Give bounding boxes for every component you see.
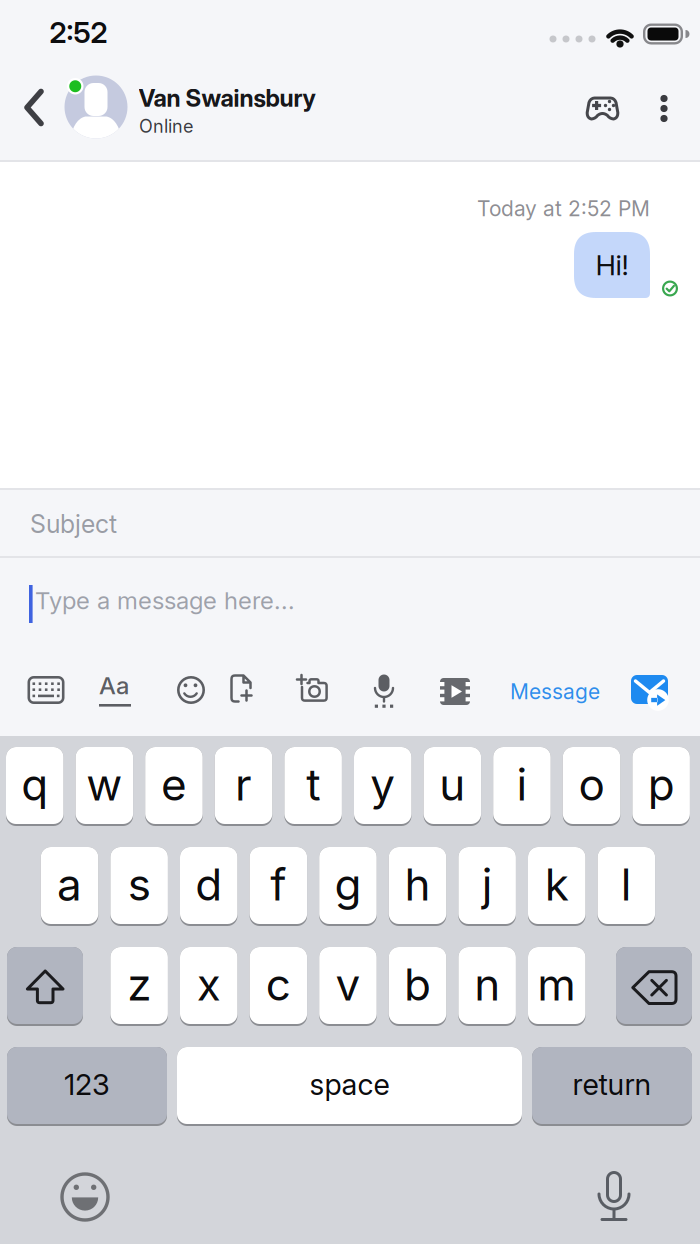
button[interactable]: q	[6, 747, 63, 826]
button[interactable]: b	[389, 947, 446, 1026]
button[interactable]: space	[177, 1047, 522, 1126]
button[interactable]: p	[632, 747, 690, 826]
staticText: Online	[139, 115, 193, 137]
button[interactable]: Emoji keyboard	[60, 1172, 110, 1222]
button[interactable]: m	[528, 947, 585, 1026]
staticText: t	[306, 758, 320, 811]
button[interactable]: Take photo	[296, 674, 328, 702]
button[interactable]: return	[532, 1047, 692, 1126]
button[interactable]: Dictation	[597, 1168, 633, 1224]
button[interactable]: More options	[660, 95, 668, 122]
button[interactable]: e	[145, 747, 203, 826]
staticText: 2:52	[49, 15, 107, 50]
button[interactable]: l	[598, 847, 655, 926]
button[interactable]: v	[319, 947, 377, 1026]
button[interactable]: f	[250, 847, 307, 926]
button[interactable]: d	[180, 847, 237, 926]
button[interactable]: a	[41, 847, 98, 926]
staticText: k	[545, 858, 569, 911]
staticText: s	[128, 858, 151, 911]
button[interactable]: w	[76, 747, 133, 826]
staticText: Hi!	[595, 248, 628, 282]
button[interactable]: c	[250, 947, 307, 1026]
button[interactable]: Emoji	[177, 676, 205, 704]
staticText: space	[309, 1067, 389, 1102]
button[interactable]: Game info	[587, 95, 618, 121]
staticText: d	[195, 858, 222, 911]
staticText: a	[57, 858, 82, 911]
button[interactable]: 123	[7, 1047, 167, 1126]
button[interactable]: g	[319, 847, 377, 926]
staticText: l	[621, 858, 632, 911]
staticText: j	[482, 858, 493, 911]
staticText: n	[474, 958, 500, 1011]
staticText: r	[235, 758, 252, 811]
staticText: f	[270, 858, 286, 911]
button[interactable]: Back	[23, 89, 45, 127]
button[interactable]: k	[528, 847, 585, 926]
button[interactable]: Type a message here...	[35, 586, 295, 615]
button[interactable]: h	[389, 847, 446, 926]
button[interactable]: Video	[440, 678, 470, 705]
staticText: w	[86, 758, 122, 811]
staticText: Aa	[99, 671, 129, 700]
staticText: z	[127, 958, 151, 1011]
button[interactable]: y	[354, 747, 411, 826]
button[interactable]: n	[458, 947, 516, 1026]
staticText: Van Swainsbury	[138, 83, 315, 112]
button[interactable]: Text formatting	[99, 671, 131, 707]
staticText: b	[404, 958, 431, 1011]
staticText: return	[572, 1067, 651, 1102]
button[interactable]: Shift	[7, 947, 83, 1026]
button[interactable]: Hi!	[574, 232, 650, 298]
staticText: v	[335, 958, 360, 1011]
staticText: i	[516, 758, 527, 811]
staticText: h	[405, 858, 431, 911]
button[interactable]: Delete	[616, 947, 692, 1026]
button[interactable]: Voice message	[373, 674, 395, 708]
staticText: g	[334, 858, 361, 911]
button[interactable]: s	[110, 847, 168, 926]
button[interactable]: Subject	[0, 491, 700, 557]
button[interactable]: Send	[630, 674, 670, 710]
button[interactable]: z	[110, 947, 168, 1026]
staticText: 123	[64, 1067, 110, 1102]
staticText: o	[578, 758, 604, 811]
staticText: q	[21, 758, 48, 811]
staticText: y	[370, 758, 395, 811]
staticText: m	[537, 958, 576, 1011]
staticText: e	[161, 758, 187, 811]
staticText: x	[197, 958, 221, 1011]
staticText: Type a message here...	[35, 586, 295, 615]
staticText: Message	[510, 679, 600, 704]
staticText: Today at 2:52 PM	[477, 196, 650, 221]
staticText: u	[439, 758, 465, 811]
staticText: Subject	[30, 509, 117, 539]
button[interactable]: j	[458, 847, 516, 926]
button[interactable]: Van Swainsbury	[64, 75, 320, 138]
staticText: p	[648, 758, 675, 811]
staticText: c	[266, 958, 291, 1011]
button[interactable]: u	[424, 747, 481, 826]
button[interactable]: Attach file	[230, 674, 253, 703]
button[interactable]: i	[493, 747, 551, 826]
button[interactable]: o	[563, 747, 620, 826]
button[interactable]: r	[215, 747, 272, 826]
button[interactable]: Message	[510, 679, 600, 704]
button[interactable]: t	[284, 747, 342, 826]
button[interactable]: x	[180, 947, 237, 1026]
button[interactable]: Keyboard	[27, 675, 65, 705]
